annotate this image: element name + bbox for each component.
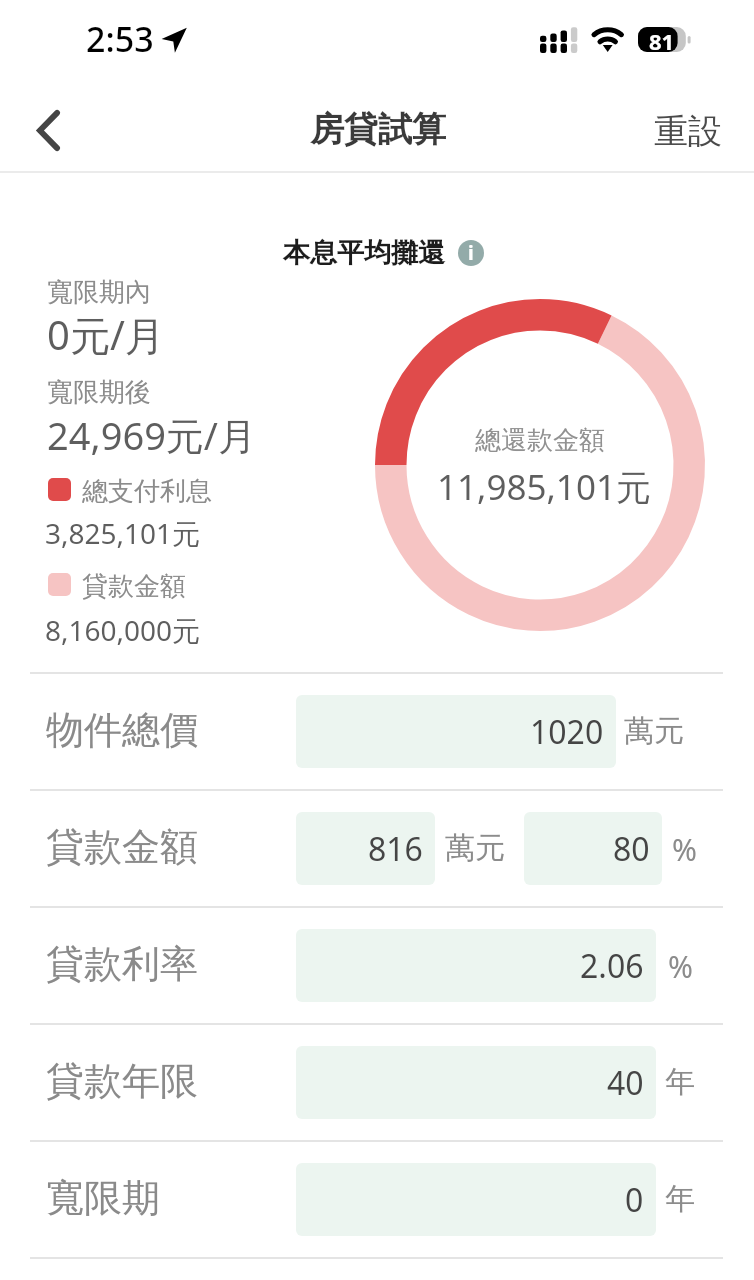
staticText: % — [672, 829, 697, 870]
staticText: 貸款金額 — [82, 570, 186, 603]
button[interactable]: 重設 — [634, 100, 742, 162]
staticText: 3,825,101元 — [45, 514, 201, 552]
staticText: 11,985,101元 — [437, 463, 651, 511]
staticText: 物件總價 — [46, 706, 198, 754]
staticText: 寬限期後 — [47, 376, 151, 409]
staticText: 房貸試算 — [310, 108, 446, 151]
button[interactable]: 1020 — [296, 695, 616, 768]
staticText: 貸款金額 — [46, 823, 198, 871]
staticText: 40 — [607, 1061, 644, 1105]
staticText: 2.06 — [580, 944, 644, 988]
staticText: 年 — [665, 1180, 695, 1218]
staticText: 重設 — [654, 110, 722, 153]
staticText: 0 — [625, 1178, 644, 1222]
staticText: 萬元 — [445, 829, 505, 867]
other: Location in use — [161, 27, 187, 53]
button[interactable]: 40 — [296, 1046, 656, 1119]
staticText: 24,969元/月 — [47, 409, 257, 461]
staticText: 81 — [649, 26, 675, 51]
button[interactable]: Back — [16, 98, 80, 162]
button[interactable] — [30, 674, 723, 789]
staticText: 總還款金額 — [475, 424, 605, 457]
staticText: 80 — [613, 827, 650, 871]
staticText: 8,160,000元 — [45, 611, 201, 649]
staticText: 年 — [665, 1063, 695, 1101]
button[interactable]: 2.06 — [296, 929, 656, 1002]
button[interactable] — [30, 1025, 723, 1140]
staticText: 貸款利率 — [46, 940, 198, 988]
staticText: i — [468, 240, 474, 266]
button[interactable]: Info — [458, 240, 484, 266]
staticText: 本息平均攤還 — [283, 236, 445, 270]
button[interactable] — [30, 1142, 723, 1257]
button[interactable]: 816 — [296, 812, 435, 885]
button[interactable]: 80 — [524, 812, 662, 885]
staticText: 總支付利息 — [82, 475, 212, 508]
other: Wi-Fi — [588, 25, 628, 55]
staticText: 貸款年限 — [46, 1057, 198, 1105]
other: Cellular signal — [540, 27, 578, 53]
staticText: 寬限期 — [46, 1174, 160, 1222]
button[interactable] — [30, 908, 723, 1023]
staticText: 2:53 — [86, 16, 154, 62]
other: Battery 81 percent — [638, 27, 691, 52]
button[interactable]: 0 — [296, 1163, 656, 1236]
staticText: 1020 — [530, 710, 604, 754]
staticText: % — [668, 946, 693, 987]
staticText: 寬限期內 — [47, 276, 151, 309]
staticText: 816 — [368, 827, 423, 871]
button[interactable] — [30, 791, 723, 906]
staticText: 0元/月 — [47, 307, 165, 362]
staticText: 萬元 — [624, 712, 684, 750]
